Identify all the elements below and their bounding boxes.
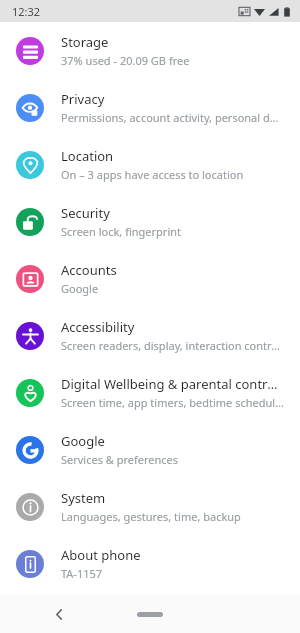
button[interactable]: System	[0, 478, 300, 535]
staticText: Google	[61, 281, 99, 296]
staticText: 37% used - 20.09 GB free	[61, 53, 190, 68]
button[interactable]: Privacy	[0, 79, 300, 136]
button[interactable]: Digital Wellbeing & parental controls	[0, 364, 300, 421]
staticText: Location	[61, 147, 114, 165]
button[interactable]: Location	[0, 136, 300, 193]
staticText: Screen time, app timers, bedtime schedul…	[61, 395, 284, 410]
button[interactable]: Accessibility	[0, 307, 300, 364]
staticText: Accessibility	[61, 318, 135, 336]
button[interactable]: About phone	[0, 535, 300, 592]
staticText: Security	[61, 204, 110, 222]
button[interactable]: Back	[46, 601, 72, 627]
staticText: About phone	[61, 546, 141, 564]
staticText: Privacy	[61, 90, 105, 108]
staticText: Accounts	[61, 261, 117, 279]
staticText: TA-1157	[61, 566, 103, 581]
staticText: On – 3 apps have access to location	[61, 167, 244, 182]
button[interactable]: Google	[0, 421, 300, 478]
button[interactable]: Home	[130, 604, 170, 624]
staticText: Storage	[61, 33, 109, 51]
staticText: Permissions, account activity, personal …	[61, 110, 284, 125]
staticText: Services & preferences	[61, 452, 179, 467]
staticText: Screen lock, fingerprint	[61, 224, 182, 239]
staticText: Digital Wellbeing & parental controls	[61, 375, 284, 393]
staticText: Languages, gestures, time, backup	[61, 509, 241, 524]
staticText: Google	[61, 432, 105, 450]
button[interactable]: Security	[0, 193, 300, 250]
staticText: System	[61, 489, 106, 507]
button[interactable]: Storage	[0, 22, 300, 79]
staticText: 12:32	[12, 4, 41, 19]
button[interactable]: Accounts	[0, 250, 300, 307]
staticText: Screen readers, display, interaction con…	[61, 338, 284, 353]
